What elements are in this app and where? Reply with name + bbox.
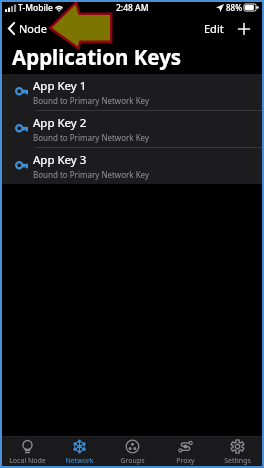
button[interactable]: Proxy — [159, 437, 211, 468]
button[interactable]: Groups — [106, 437, 158, 468]
staticText: App Key 2 — [33, 115, 87, 131]
staticText: T-Mobile — [18, 2, 53, 14]
staticText: Settings — [224, 456, 251, 466]
staticText: Proxy — [176, 456, 195, 466]
button[interactable]: App Key 2 — [0, 111, 264, 148]
button[interactable]: Add — [235, 19, 253, 39]
staticText: Edit — [204, 21, 224, 36]
button[interactable]: Network — [53, 437, 105, 468]
button[interactable]: Local Node — [1, 437, 53, 468]
staticText: Groups — [120, 456, 145, 466]
staticText: Application Keys — [12, 43, 182, 71]
staticText: 2:48 AM — [116, 2, 149, 14]
staticText: Network — [65, 456, 94, 466]
staticText: Bound to Primary Network Key — [33, 132, 150, 143]
staticText: 88% — [226, 2, 242, 13]
staticText: Bound to Primary Network Key — [33, 169, 150, 180]
button[interactable]: App Key 3 — [0, 148, 264, 184]
button[interactable]: App Key 1 — [0, 74, 264, 111]
staticText: Local Node — [9, 456, 46, 466]
staticText: App Key 3 — [33, 152, 87, 168]
button[interactable]: Settings — [211, 437, 263, 468]
staticText: App Key 1 — [33, 78, 87, 94]
button[interactable]: Node — [0, 18, 53, 39]
staticText: Bound to Primary Network Key — [33, 95, 150, 106]
staticText: Node — [19, 21, 47, 36]
button[interactable]: Edit — [200, 18, 228, 39]
